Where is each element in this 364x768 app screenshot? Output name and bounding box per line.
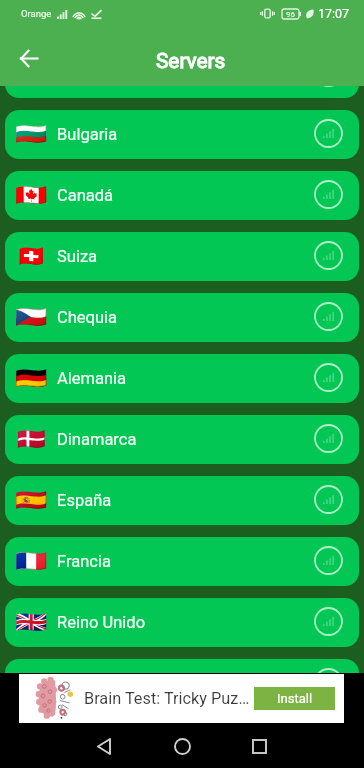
button[interactable]: 🇬🇧 — [5, 598, 359, 647]
staticText: Install — [277, 691, 313, 706]
staticText: Chequia — [57, 308, 118, 327]
button[interactable]: Back — [88, 730, 120, 762]
staticText: Servers — [156, 49, 226, 73]
staticText: 🇪🇸 — [15, 488, 47, 512]
button[interactable]: 🇪🇸 — [5, 476, 359, 525]
staticText: 🇫🇷 — [15, 549, 47, 573]
button[interactable]: 🇨🇦 — [5, 171, 359, 220]
staticText: Dinamarca — [57, 430, 137, 449]
staticText: Canadá — [57, 186, 114, 205]
staticText: Brain Test: Tricky Puz… — [84, 689, 250, 708]
staticText: Alemania — [57, 369, 127, 388]
button[interactable]: 🇩🇪 — [5, 354, 359, 403]
staticText: 🇭🇺 — [15, 671, 47, 695]
staticText: 🇬🇧 — [15, 610, 47, 634]
staticText: 🇩🇰 — [15, 427, 47, 451]
button[interactable]: Back — [12, 41, 46, 75]
button[interactable]: 🇭🇺 — [5, 659, 359, 708]
button[interactable]: 🇩🇰 — [5, 415, 359, 464]
staticText: Hungría — [57, 674, 115, 693]
button[interactable]: 🇧🇬 — [5, 110, 359, 159]
staticText: Francia — [57, 552, 111, 571]
staticText: 🇨🇿 — [15, 305, 47, 329]
button[interactable]: 🇫🇷 — [5, 537, 359, 586]
staticText: 17:07 — [318, 6, 350, 21]
staticText: Suiza — [57, 247, 98, 266]
button[interactable]: 🇦🇹 — [5, 49, 359, 98]
staticText: 🇨🇭 — [15, 244, 47, 268]
staticText: Reino Unido — [57, 613, 146, 632]
staticText: 96 — [286, 10, 295, 19]
button[interactable]: 🇨🇿 — [5, 293, 359, 342]
staticText: 🇧🇬 — [15, 122, 47, 146]
staticText: 🇨🇦 — [15, 183, 47, 207]
button[interactable]: 🇨🇭 — [5, 232, 359, 281]
staticText: 🇦🇹 — [15, 61, 47, 85]
button[interactable]: Install — [254, 687, 335, 710]
button[interactable]: Home — [166, 730, 198, 762]
staticText: Bulgaria — [57, 125, 118, 144]
staticText: Orange — [21, 8, 52, 19]
staticText: 🇩🇪 — [15, 366, 47, 390]
button[interactable]: Recent apps — [243, 730, 275, 762]
staticText: España — [57, 491, 112, 510]
button[interactable]: Brain Test: Tricky Puz… — [19, 674, 344, 723]
